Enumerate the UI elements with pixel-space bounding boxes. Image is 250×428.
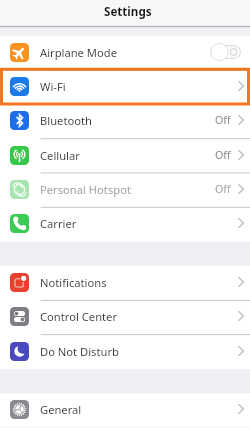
button[interactable]: Airplane Mode [0,36,250,70]
staticText: Personal Hotspot [40,182,131,197]
staticText: Off [215,113,231,127]
button[interactable]: Bluetooth [0,104,250,138]
staticText: Control Center [40,309,118,324]
staticText: Wi-Fi [40,79,66,94]
staticText: General [40,402,82,417]
button[interactable]: Cellular [0,139,250,173]
staticText: Off [215,148,231,162]
button[interactable]: General [0,393,250,427]
staticText: Settings [104,4,152,20]
staticText: Do Not Disturb [40,344,119,359]
button[interactable]: Carrier [0,207,250,241]
staticText: Notifications [40,275,107,290]
staticText: Carrier [40,216,77,231]
staticText: Bluetooth [40,113,92,128]
button[interactable]: Control Center [0,300,250,334]
button[interactable]: Do Not Disturb [0,335,250,369]
staticText: Cellular [40,148,80,163]
button[interactable]: Personal Hotspot [0,173,250,207]
button[interactable]: Notifications [0,266,250,300]
button[interactable]: Airplane Mode toggle [210,43,241,61]
staticText: Off [215,182,231,196]
button[interactable]: Wi-Fi [0,70,250,104]
staticText: Airplane Mode [40,45,117,60]
